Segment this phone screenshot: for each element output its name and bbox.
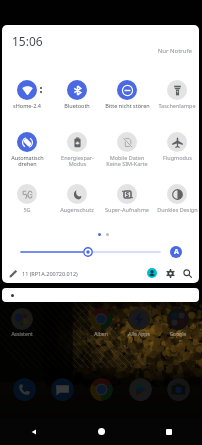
staticText: Bluetooth	[64, 102, 90, 109]
button[interactable]: Kamera	[167, 378, 190, 401]
button[interactable]: Telefon	[13, 378, 36, 401]
staticText: Google	[153, 331, 202, 338]
button[interactable]: User	[145, 266, 159, 280]
staticText: Nur Notrufe	[132, 47, 192, 55]
button[interactable]: Play Store	[129, 378, 152, 401]
button[interactable]: Alle Apps	[128, 308, 150, 330]
button[interactable]: Energiespar- Modus	[53, 132, 101, 168]
staticText: Mobile Daten Keine SIM-Karte	[106, 154, 148, 168]
button[interactable]: Recents	[135, 418, 202, 445]
staticText: Bitte nicht stören	[105, 102, 150, 109]
staticText: Taschenlampe	[158, 102, 196, 109]
staticText: sHome-2.4	[13, 102, 41, 109]
button[interactable]: Flugmodus	[153, 132, 199, 161]
button[interactable]: Assistent	[11, 308, 33, 330]
staticText: A	[174, 247, 179, 257]
staticText: 15:06	[12, 33, 43, 49]
button[interactable]: Auto brightness	[170, 246, 182, 258]
staticText: Assistent	[0, 331, 47, 338]
button[interactable]: Edit	[9, 269, 18, 278]
button[interactable]: Back	[0, 418, 68, 445]
staticText: Super-Aufnahme	[105, 206, 149, 213]
button[interactable]: Chrome	[90, 378, 113, 401]
button[interactable]: Home	[68, 418, 135, 445]
button[interactable]: Augenschutz	[53, 184, 101, 213]
staticText: 5G	[23, 206, 31, 213]
staticText: Automatisch drehen	[11, 154, 44, 168]
button[interactable]: 5G	[3, 184, 51, 213]
button[interactable]: Settings	[163, 266, 177, 280]
button[interactable]: Mobile Daten Keine SIM-Karte	[103, 132, 151, 168]
staticText: Flugmodus	[163, 154, 192, 161]
staticText: Alle Apps	[114, 331, 164, 338]
button[interactable]: Automatisch drehen	[3, 132, 51, 168]
button[interactable]: Super-Aufnahme	[103, 184, 151, 213]
staticText: Augenschutz	[60, 206, 94, 213]
button[interactable]: Taschenlampe	[153, 80, 199, 109]
button[interactable]: Bluetooth	[53, 80, 101, 109]
staticText: 11 (RP1A.200720.012)	[22, 270, 78, 277]
button[interactable]: sHome-2.4	[3, 80, 51, 109]
staticText: Alben	[76, 331, 126, 338]
button[interactable]: Dunkles Design	[153, 184, 199, 213]
staticText: Dunkles Design	[157, 206, 198, 213]
button[interactable]: Chrome	[90, 308, 112, 330]
button[interactable]: Google	[167, 308, 189, 330]
staticText: Energiespar- Modus	[61, 154, 94, 168]
button[interactable]: Search	[180, 266, 194, 280]
button[interactable]: Bitte nicht stören	[103, 80, 151, 109]
button[interactable]: Nachrichten	[51, 378, 74, 401]
